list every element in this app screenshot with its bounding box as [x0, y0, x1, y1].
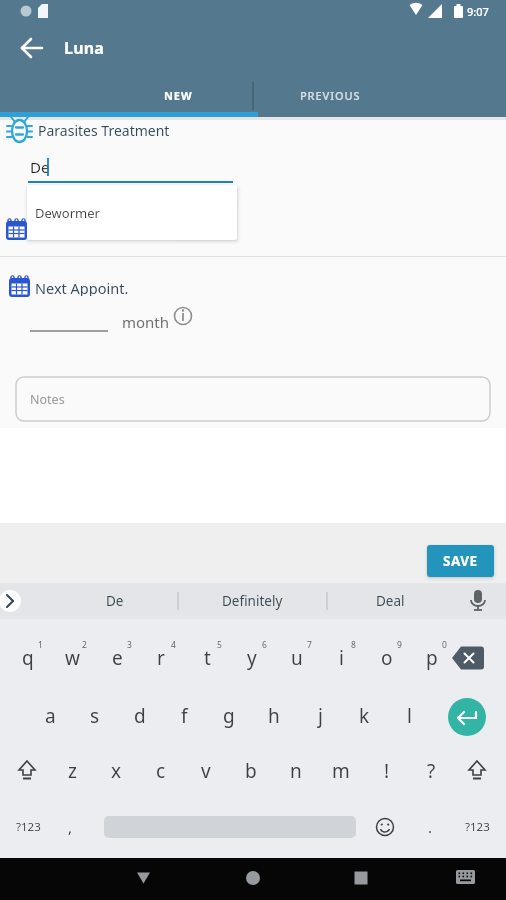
button[interactable]: r	[146, 644, 176, 672]
staticText: e	[112, 645, 123, 671]
staticText: o	[381, 645, 393, 671]
staticText: t	[204, 645, 211, 671]
staticText: ,	[68, 817, 73, 837]
button[interactable]: m	[326, 757, 356, 785]
staticText: De	[30, 157, 50, 177]
button[interactable]: o	[372, 644, 402, 672]
button[interactable]	[337, 858, 385, 900]
staticText: k	[359, 703, 370, 729]
staticText: 9	[397, 639, 402, 651]
button[interactable]	[27, 185, 237, 240]
button[interactable]: g	[214, 702, 244, 730]
staticText: ?	[427, 758, 436, 784]
button[interactable]: a	[35, 702, 65, 730]
staticText: s	[90, 703, 100, 729]
staticText: ?123	[16, 819, 41, 835]
button[interactable]: c	[146, 757, 176, 785]
button[interactable]: j	[305, 702, 335, 730]
staticText: v	[201, 758, 211, 784]
staticText: r	[157, 645, 165, 671]
button[interactable]	[55, 583, 178, 619]
button[interactable]: .	[420, 817, 440, 837]
button[interactable]: n	[281, 757, 311, 785]
staticText: 0	[442, 639, 447, 651]
button[interactable]: u	[282, 644, 312, 672]
staticText: month	[122, 312, 170, 332]
staticText: w	[65, 645, 80, 671]
staticText: 9:07	[467, 4, 489, 19]
staticText: m	[332, 758, 350, 784]
staticText: a	[45, 703, 56, 729]
staticText: .	[428, 817, 433, 837]
staticText: h	[268, 703, 280, 729]
button[interactable]: e	[102, 644, 132, 672]
button[interactable]: b	[236, 757, 266, 785]
button[interactable]	[327, 583, 457, 619]
button[interactable]: t	[192, 644, 222, 672]
staticText: q	[22, 645, 34, 671]
button[interactable]: !	[372, 757, 402, 785]
staticText: 1	[38, 639, 43, 651]
button[interactable]: s	[80, 702, 110, 730]
staticText: PREVIOUS	[300, 88, 361, 103]
staticText: Notes	[30, 391, 65, 408]
button[interactable]	[0, 80, 253, 112]
staticText: u	[291, 645, 303, 671]
button[interactable]	[16, 377, 490, 421]
staticText: 7	[307, 639, 312, 651]
staticText: b	[245, 758, 257, 784]
staticText: d	[134, 703, 146, 729]
staticText: l	[407, 703, 412, 729]
staticText: j	[318, 703, 323, 729]
button[interactable]	[444, 858, 492, 900]
button[interactable]: w	[57, 644, 87, 672]
staticText: n	[290, 758, 302, 784]
button[interactable]: ?	[416, 757, 446, 785]
button[interactable]: f	[169, 702, 199, 730]
button[interactable]: ?123	[8, 817, 48, 837]
button[interactable]: q	[13, 644, 43, 672]
button[interactable]: i	[326, 644, 356, 672]
staticText: Definitely	[222, 592, 283, 610]
staticText: p	[426, 645, 438, 671]
button[interactable]: ?123	[457, 817, 497, 837]
button[interactable]	[120, 858, 168, 900]
staticText: De	[106, 592, 124, 610]
staticText: ?123	[465, 819, 490, 835]
button[interactable]	[229, 858, 277, 900]
button[interactable]: v	[191, 757, 221, 785]
button[interactable]: d	[125, 702, 155, 730]
staticText: i	[339, 645, 344, 671]
staticText: Deal	[376, 592, 405, 610]
staticText: 3	[127, 639, 132, 651]
button[interactable]: x	[101, 757, 131, 785]
staticText: NEW	[164, 88, 193, 103]
button[interactable]	[448, 698, 486, 736]
staticText: 2	[82, 639, 87, 651]
button[interactable]: SAVE	[427, 545, 494, 577]
button[interactable]	[12, 28, 52, 68]
button[interactable]: k	[349, 702, 379, 730]
button[interactable]	[178, 583, 327, 619]
button[interactable]: l	[394, 702, 424, 730]
button[interactable]: h	[259, 702, 289, 730]
button[interactable]: y	[237, 644, 267, 672]
staticText: SAVE	[443, 552, 478, 570]
button[interactable]: p	[417, 644, 447, 672]
staticText: Dewormer	[35, 204, 100, 222]
staticText: 8	[351, 639, 356, 651]
staticText: g	[223, 703, 235, 729]
staticText: !	[384, 758, 390, 784]
staticText: 4	[171, 639, 176, 651]
staticText: f	[181, 703, 188, 729]
staticText: Parasites Treatment	[38, 121, 170, 139]
button[interactable]	[253, 80, 506, 112]
staticText: x	[111, 758, 122, 784]
button[interactable]: z	[57, 757, 87, 785]
staticText: 5	[217, 639, 222, 651]
button[interactable]: ,	[60, 817, 80, 837]
staticText: z	[68, 758, 77, 784]
